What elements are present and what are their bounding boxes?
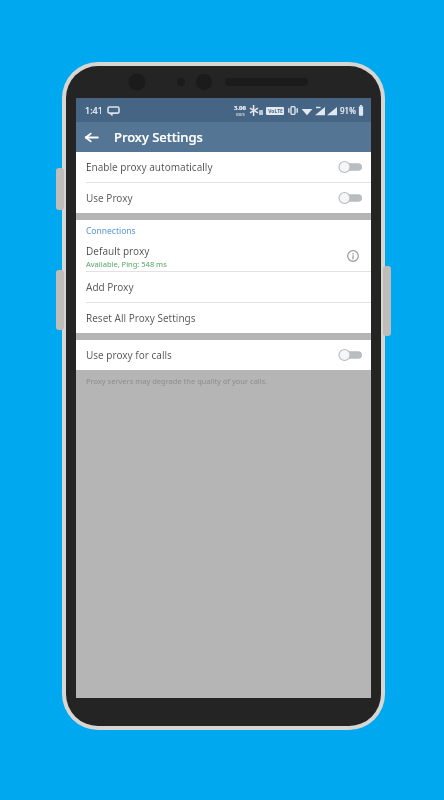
staticText: Add Proxy: [86, 280, 134, 294]
staticText: 91%: [340, 105, 356, 116]
staticText: Connections: [86, 225, 136, 237]
staticText: Use proxy for calls: [86, 348, 331, 362]
staticText: KB/S: [236, 112, 245, 117]
staticText: 3.06: [234, 104, 246, 112]
button[interactable]: Default proxy: [76, 241, 371, 271]
button[interactable]: Reset All Proxy Settings: [76, 303, 371, 333]
staticText: Enable proxy automatically: [86, 160, 331, 174]
staticText: Use Proxy: [86, 191, 331, 205]
staticText: Reset All Proxy Settings: [86, 311, 196, 325]
staticText: Default proxy: [86, 244, 150, 258]
staticText: Available, Ping: 548 ms: [86, 259, 167, 269]
button[interactable]: Enable proxy automatically: [76, 152, 371, 182]
button[interactable]: Add Proxy: [76, 272, 371, 302]
staticText: 1:41: [85, 104, 103, 116]
button[interactable]: Use Proxy: [76, 183, 371, 213]
button[interactable]: Back: [76, 122, 106, 152]
staticText: Proxy Settings: [114, 128, 203, 146]
staticText: Proxy servers may degrade the quality of…: [86, 376, 268, 386]
button[interactable]: Proxy info: [339, 242, 367, 270]
button[interactable]: Use proxy for calls: [76, 340, 371, 370]
staticText: VoLTE: [268, 108, 283, 115]
